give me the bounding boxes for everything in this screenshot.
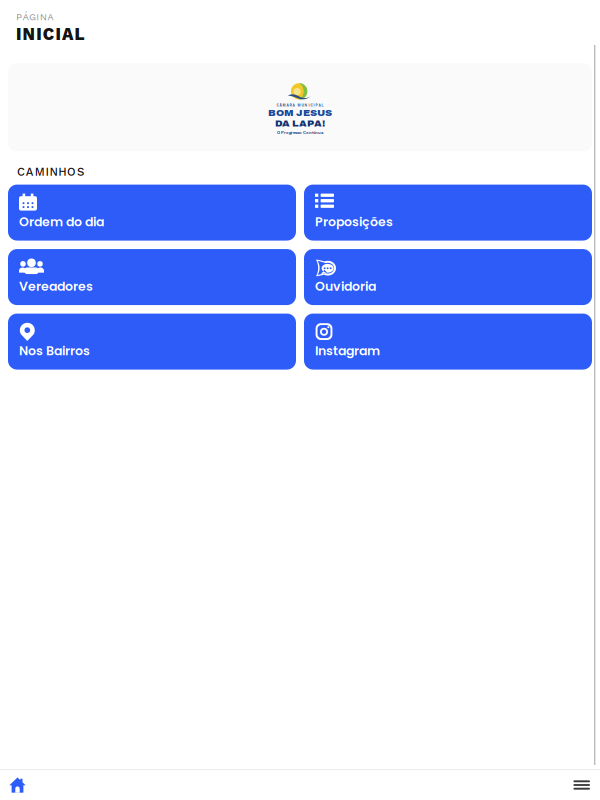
staticText: PÁGINA <box>16 11 54 23</box>
button[interactable]: Nos Bairros <box>8 314 296 370</box>
button[interactable]: Menu <box>563 770 600 800</box>
staticText: O Progresso Continua <box>277 130 323 135</box>
staticText: Ouvidoria <box>315 277 376 295</box>
staticText: Vereadores <box>19 277 93 295</box>
staticText: DA LAPA! <box>275 118 325 129</box>
button[interactable]: Início <box>0 770 35 800</box>
staticText: BOM JESUS <box>268 107 332 118</box>
staticText: INICIAL <box>16 25 85 44</box>
staticText: C Â M A R A M U N I C I P A L <box>276 103 323 107</box>
staticText: Ordem do dia <box>19 213 104 230</box>
staticText: Proposições <box>315 213 393 230</box>
button[interactable]: Ordem do dia <box>8 185 296 241</box>
staticText: Instagram <box>315 342 380 359</box>
button[interactable]: Proposições <box>304 185 592 241</box>
button[interactable]: Ouvidoria <box>304 249 592 305</box>
button[interactable]: Vereadores <box>8 249 296 305</box>
button[interactable]: Instagram <box>304 314 592 370</box>
staticText: Nos Bairros <box>19 342 90 359</box>
staticText: CAMINHOS <box>17 165 84 178</box>
